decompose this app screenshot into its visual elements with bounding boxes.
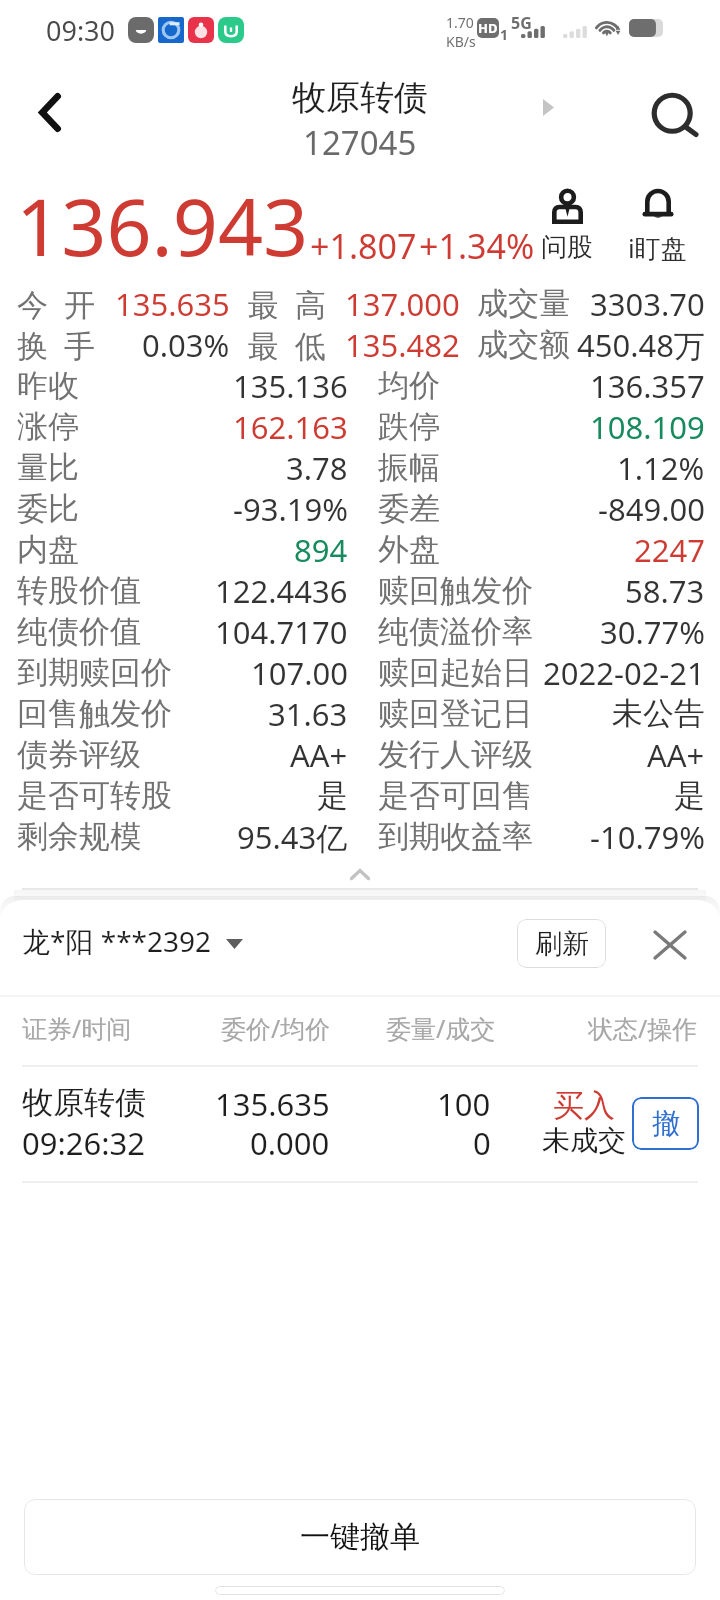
staticText: -10.79% bbox=[590, 816, 705, 857]
staticText: 最 低 bbox=[248, 324, 327, 365]
staticText: 跌停 bbox=[378, 407, 440, 446]
staticText: 09:30 bbox=[46, 12, 116, 49]
staticText: 成交额 bbox=[477, 325, 570, 364]
staticText: 894 bbox=[294, 529, 348, 570]
staticText: 状态/操作 bbox=[588, 1011, 698, 1044]
staticText: 涨停 bbox=[17, 407, 79, 446]
button[interactable]: i盯盘 bbox=[617, 189, 697, 266]
button[interactable]: 牧原转债 bbox=[240, 70, 480, 170]
staticText: 122.4436 bbox=[215, 570, 348, 611]
staticText: 136.943 bbox=[16, 172, 309, 280]
staticText: 1 bbox=[500, 25, 509, 44]
staticText: 振幅 bbox=[378, 448, 440, 487]
staticText: 外盘 bbox=[378, 530, 440, 569]
staticText: 127045 bbox=[303, 120, 417, 165]
staticText: 赎回起始日 bbox=[378, 653, 533, 692]
staticText: 内盘 bbox=[17, 530, 79, 569]
button[interactable]: 刷新 bbox=[517, 919, 606, 968]
staticText: 赎回触发价 bbox=[378, 571, 533, 610]
button[interactable]: 一键撤单 bbox=[24, 1499, 696, 1575]
staticText: 135.635 bbox=[115, 283, 230, 324]
button[interactable]: 龙*阳 ***2392 bbox=[22, 922, 243, 960]
staticText: 95.43亿 bbox=[237, 816, 348, 857]
button[interactable]: Next stock bbox=[524, 84, 570, 130]
staticText: 到期赎回价 bbox=[17, 653, 172, 692]
staticText: 刷新 bbox=[535, 927, 589, 961]
staticText: 发行人评级 bbox=[378, 735, 533, 774]
staticText: 纯债溢价率 bbox=[378, 612, 533, 651]
staticText: 162.163 bbox=[233, 406, 348, 447]
staticText: 今 开 bbox=[17, 283, 96, 324]
staticText: AA+ bbox=[647, 734, 705, 775]
staticText: 是 bbox=[317, 776, 348, 815]
staticText: 09:26:32 bbox=[22, 1122, 146, 1164]
staticText: 回售触发价 bbox=[17, 694, 172, 733]
staticText: 0.000 bbox=[250, 1122, 330, 1164]
staticText: 最 高 bbox=[248, 283, 327, 324]
staticText: 牧原转债 bbox=[22, 1083, 146, 1122]
button[interactable]: Close bbox=[647, 922, 693, 968]
staticText: 剩余规模 bbox=[17, 817, 141, 856]
button[interactable]: Collapse bbox=[0, 857, 720, 886]
staticText: 均价 bbox=[378, 366, 440, 405]
staticText: 是否可回售 bbox=[378, 776, 533, 815]
staticText: 是 bbox=[674, 776, 705, 815]
staticText: 5G bbox=[511, 12, 532, 34]
staticText: 58.73 bbox=[625, 570, 705, 611]
staticText: 30.77% bbox=[600, 611, 705, 652]
staticText: 136.357 bbox=[590, 365, 705, 406]
staticText: i盯盘 bbox=[628, 230, 687, 266]
staticText: 委比 bbox=[17, 489, 79, 528]
staticText: 137.000 bbox=[345, 283, 460, 324]
button[interactable]: 撤 bbox=[632, 1097, 699, 1150]
staticText: 0 bbox=[473, 1122, 491, 1164]
staticText: 量比 bbox=[17, 448, 79, 487]
button[interactable]: Search bbox=[645, 87, 709, 151]
staticText: 买入 bbox=[553, 1086, 615, 1125]
staticText: +1.807 bbox=[310, 223, 417, 269]
staticText: -849.00 bbox=[598, 488, 705, 529]
staticText: 换 手 bbox=[17, 324, 96, 365]
staticText: 转股价值 bbox=[17, 571, 141, 610]
staticText: 到期收益率 bbox=[378, 817, 533, 856]
staticText: -93.19% bbox=[233, 488, 348, 529]
staticText: 未成交 bbox=[542, 1123, 626, 1158]
staticText: 纯债价值 bbox=[17, 612, 141, 651]
staticText: 一键撤单 bbox=[300, 1518, 420, 1556]
button[interactable]: 牧原转债 bbox=[0, 1067, 720, 1183]
staticText: 债券评级 bbox=[17, 735, 141, 774]
staticText: 135.482 bbox=[345, 324, 460, 365]
staticText: 证券/时间 bbox=[22, 1011, 132, 1044]
staticText: 107.00 bbox=[251, 652, 348, 693]
staticText: 450.48万 bbox=[577, 324, 705, 365]
staticText: 撤 bbox=[652, 1106, 680, 1141]
staticText: 3.78 bbox=[286, 447, 348, 488]
staticText: 0.03% bbox=[142, 324, 230, 365]
staticText: 赎回登记日 bbox=[378, 694, 533, 733]
staticText: 31.63 bbox=[268, 693, 348, 734]
staticText: 3303.70 bbox=[590, 283, 705, 324]
staticText: 成交量 bbox=[477, 284, 570, 323]
staticText: 1.12% bbox=[617, 447, 705, 488]
staticText: 2247 bbox=[634, 529, 705, 570]
staticText: 委差 bbox=[378, 489, 440, 528]
staticText: 龙*阳 ***2392 bbox=[22, 922, 212, 960]
staticText: 是否可转股 bbox=[17, 776, 172, 815]
staticText: HD bbox=[478, 19, 498, 37]
staticText: 100 bbox=[437, 1083, 491, 1125]
staticText: AA+ bbox=[290, 734, 348, 775]
button[interactable]: 问股 bbox=[530, 190, 604, 264]
staticText: 委价/均价 bbox=[221, 1011, 331, 1044]
staticText: 未公告 bbox=[612, 694, 705, 733]
staticText: 135.635 bbox=[215, 1083, 330, 1125]
staticText: 牧原转债 bbox=[292, 76, 428, 119]
staticText: 委量/成交 bbox=[386, 1011, 496, 1044]
button[interactable]: Back bbox=[18, 80, 82, 144]
staticText: 135.136 bbox=[233, 365, 348, 406]
staticText: +1.34% bbox=[419, 223, 535, 269]
staticText: 108.109 bbox=[590, 406, 705, 447]
staticText: 1.70 bbox=[446, 13, 474, 32]
staticText: 2022-02-21 bbox=[543, 652, 705, 693]
staticText: 104.7170 bbox=[215, 611, 348, 652]
staticText: 问股 bbox=[541, 231, 593, 264]
